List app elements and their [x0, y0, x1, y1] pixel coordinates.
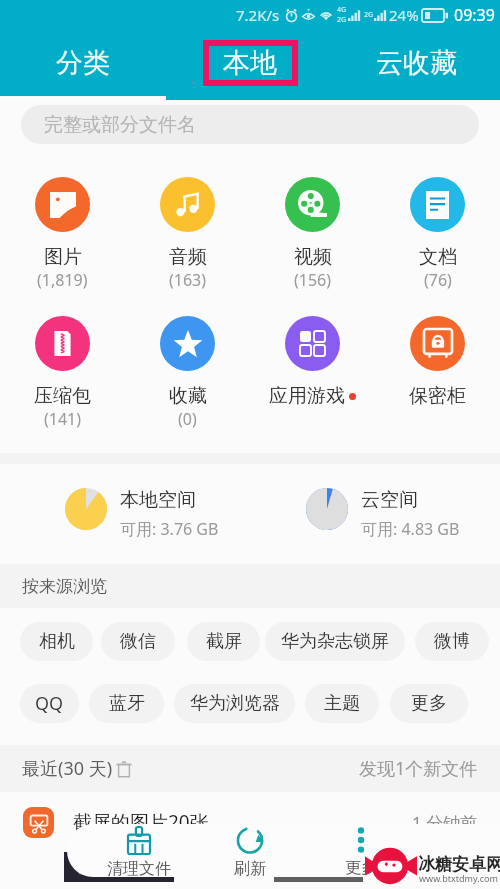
button[interactable]: QQ [20, 684, 79, 723]
staticText: 更多 [411, 692, 447, 715]
button[interactable]: 微博 [415, 622, 489, 661]
staticText: 可用: 4.83 GB [361, 518, 460, 540]
staticText: 按来源浏览 [22, 576, 107, 597]
staticText: 微博 [434, 630, 470, 653]
staticText: 云空间 [361, 488, 418, 512]
staticText: 截屏 [206, 630, 242, 653]
staticText: 刷新 [234, 859, 266, 877]
staticText: 2G [337, 15, 347, 25]
staticText: www.btxtdmy.com [419, 872, 498, 884]
button[interactable]: 更多 [390, 684, 468, 723]
staticText: 2G [364, 10, 374, 20]
button[interactable]: 蓝牙 [89, 684, 164, 723]
staticText: 收藏 [169, 384, 207, 408]
staticText: 云收藏 [376, 46, 457, 80]
staticText: 更多 [345, 858, 377, 877]
button[interactable]: 图片 [0, 177, 125, 291]
button[interactable]: 完整或部分文件名 [21, 105, 479, 144]
button[interactable]: Delete [115, 760, 133, 778]
button[interactable]: 截屏 [187, 622, 260, 661]
button[interactable]: 应用游戏 [250, 316, 375, 408]
staticText: 音频 [169, 245, 207, 269]
button[interactable]: 华为浏览器 [174, 684, 295, 723]
staticText: 华为杂志锁屏 [281, 630, 389, 653]
staticText: (76) [424, 269, 452, 291]
staticText: 最近(30 天) [22, 756, 113, 781]
button[interactable]: 本地空间 [0, 464, 250, 564]
staticText: 24% [389, 5, 419, 25]
button[interactable]: 截屏的图片20张 [0, 792, 500, 852]
staticText: 视频 [294, 245, 332, 269]
staticText: (141) [44, 408, 82, 430]
button[interactable]: 云空间 [250, 464, 500, 564]
staticText: 截屏的图片20张 [73, 809, 209, 835]
button[interactable]: 音频 [125, 177, 250, 291]
staticText: 清理文件 [107, 859, 171, 877]
staticText: 微信 [120, 630, 156, 653]
button[interactable]: 本地 [166, 30, 333, 96]
staticText: (163) [169, 269, 207, 291]
staticText: 分类 [56, 46, 110, 80]
staticText: QQ [35, 691, 64, 716]
staticText: 完整或部分文件名 [44, 113, 196, 137]
staticText: 可用: 3.76 GB [120, 518, 219, 540]
staticText: 本地 [223, 46, 277, 80]
button[interactable]: 刷新 [210, 824, 290, 877]
staticText: 应用游戏 [269, 384, 345, 408]
staticText: 09:39 [454, 4, 495, 26]
staticText: 文档 [419, 245, 457, 269]
staticText: 主题 [324, 692, 360, 715]
button[interactable]: 云收藏 [333, 30, 500, 96]
button[interactable]: 视频 [250, 177, 375, 291]
staticText: (0) [178, 408, 197, 430]
staticText: 4G [337, 5, 347, 15]
button[interactable]: 主题 [305, 684, 379, 723]
staticText: 相机 [39, 630, 75, 653]
button[interactable]: 清理文件 [99, 824, 179, 877]
button[interactable]: 更多 [321, 824, 401, 877]
staticText: 保密柜 [409, 384, 466, 408]
staticText: (156) [294, 269, 332, 291]
button[interactable]: 华为杂志锁屏 [265, 622, 405, 661]
staticText: 发现1个新文件 [359, 756, 478, 781]
button[interactable]: 分类 [0, 30, 166, 96]
button[interactable]: 保密柜 [375, 316, 500, 408]
button[interactable]: 文档 [375, 177, 500, 291]
staticText: 冰糖安卓网 [418, 854, 500, 875]
staticText: 蓝牙 [109, 692, 145, 715]
button[interactable]: 压缩包 [0, 316, 125, 430]
staticText: 华为浏览器 [190, 692, 280, 715]
staticText: (1,819) [37, 269, 88, 291]
staticText: 本地空间 [120, 488, 196, 512]
staticText: 压缩包 [34, 384, 91, 408]
button[interactable]: 相机 [20, 622, 93, 661]
button[interactable]: 微信 [101, 622, 175, 661]
staticText: 1 分钟前 [412, 811, 478, 834]
button[interactable]: 收藏 [125, 316, 250, 430]
staticText: 图片 [44, 245, 82, 269]
staticText: 7.2K/s [236, 5, 280, 25]
